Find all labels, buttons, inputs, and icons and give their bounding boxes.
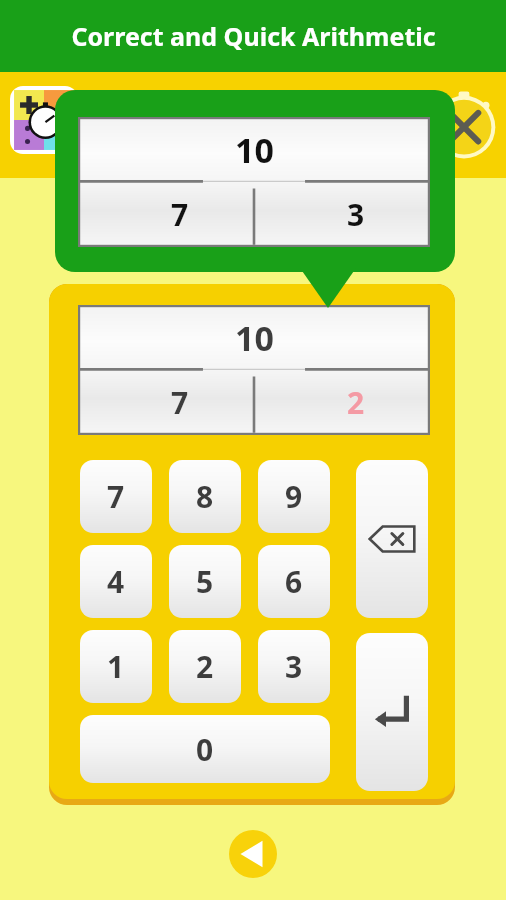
button[interactable]: 3	[258, 630, 330, 703]
staticText: 6	[285, 561, 303, 602]
staticText: 0	[196, 729, 214, 770]
staticText: 10	[235, 127, 274, 173]
button[interactable]: 0	[80, 715, 330, 783]
button[interactable]: 9	[258, 460, 330, 533]
button[interactable]: 6	[258, 545, 330, 618]
staticText: 3	[347, 194, 365, 235]
button[interactable]: App icon	[8, 84, 80, 156]
button[interactable]: 7	[80, 460, 152, 533]
button[interactable]: 5	[169, 545, 241, 618]
staticText: 5	[196, 561, 214, 602]
staticText: 8	[196, 476, 214, 517]
staticText: 2	[347, 382, 365, 423]
button[interactable]: Back	[229, 830, 277, 878]
staticText: 3	[285, 646, 303, 687]
button[interactable]: Multiplication mode	[428, 89, 500, 161]
staticText: 7	[107, 476, 125, 517]
staticText: 2	[196, 646, 214, 687]
staticText: 10	[235, 315, 274, 361]
button[interactable]: 2	[169, 630, 241, 703]
button[interactable]: Enter	[356, 633, 428, 791]
staticText: 1	[107, 646, 125, 687]
button[interactable]: 4	[80, 545, 152, 618]
button[interactable]: Backspace	[356, 460, 428, 618]
button[interactable]: 1	[80, 630, 152, 703]
staticText: 7	[171, 382, 189, 423]
staticText: 7	[171, 194, 189, 235]
staticText: 4	[107, 561, 125, 602]
button[interactable]: 8	[169, 460, 241, 533]
staticText: Correct and Quick Arithmetic	[71, 19, 436, 53]
staticText: 9	[285, 476, 303, 517]
